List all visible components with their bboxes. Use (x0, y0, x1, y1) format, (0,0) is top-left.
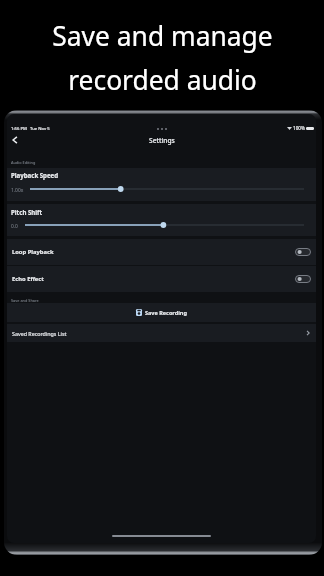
button[interactable]: Echo Effect (7, 266, 316, 292)
staticText: Settings (149, 136, 175, 145)
staticText: 1.00x (11, 187, 24, 194)
staticText: 1:56 PM Tue Nov 5 (11, 126, 50, 132)
staticText: Pitch Shift (11, 208, 43, 216)
button[interactable]: Save Recording (7, 303, 316, 322)
other: Loop Playback (295, 248, 311, 256)
staticText: recorded audio (68, 62, 257, 98)
staticText: Save Recording (145, 309, 187, 316)
staticText: Playback Speed (11, 171, 59, 179)
staticText: 100% (293, 125, 305, 131)
staticText: Save and Share (11, 298, 39, 303)
staticText: Saved Recordings List (12, 330, 67, 337)
other: Echo Effect (295, 275, 311, 283)
button[interactable]: Saved Recordings List (7, 324, 316, 342)
staticText: Save and manage (52, 18, 273, 54)
staticText: Loop Playback (12, 248, 54, 256)
staticText: Audio Editing (11, 160, 36, 165)
button[interactable]: Loop Playback (7, 239, 316, 265)
staticText: 0.0 (11, 223, 18, 230)
staticText: Echo Effect (12, 275, 44, 283)
button[interactable]: Back (7, 132, 23, 148)
